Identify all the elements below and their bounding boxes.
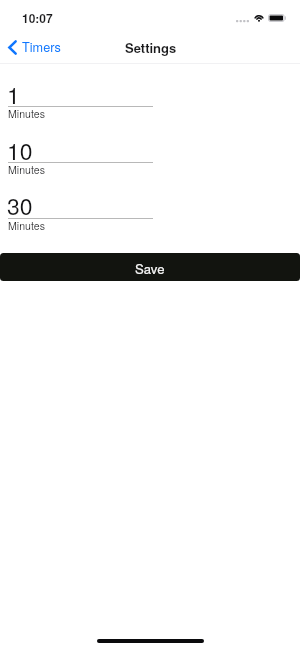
staticText: 10:07 <box>22 9 53 26</box>
staticText: Minutes <box>8 162 45 177</box>
button[interactable] <box>8 78 153 108</box>
other: Back to Timers <box>8 40 17 55</box>
staticText: 30 <box>7 189 33 222</box>
button[interactable]: Back to Timers <box>2 35 67 59</box>
staticText: Timers <box>22 37 61 55</box>
staticText: 10 <box>7 134 33 167</box>
button[interactable] <box>8 189 153 219</box>
button[interactable] <box>8 134 153 164</box>
staticText: Settings <box>125 38 177 57</box>
staticText: Minutes <box>8 106 45 121</box>
staticText: Save <box>135 259 165 278</box>
staticText: 1 <box>7 78 20 111</box>
staticText: Minutes <box>8 218 45 233</box>
button[interactable]: Save <box>0 253 300 281</box>
